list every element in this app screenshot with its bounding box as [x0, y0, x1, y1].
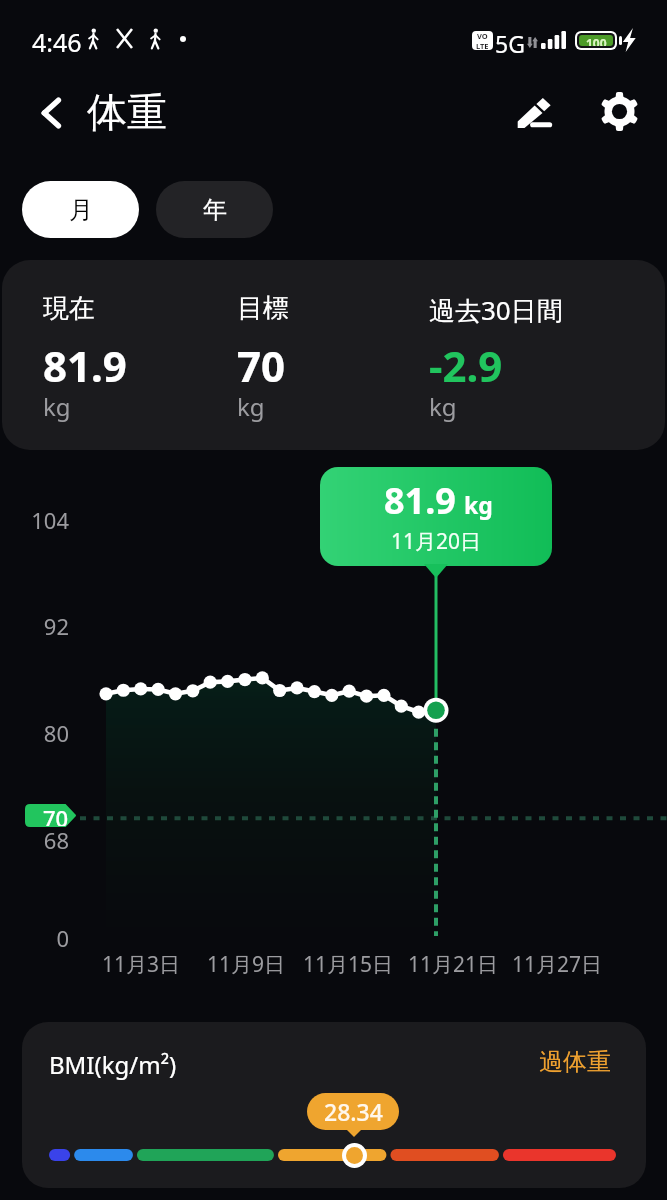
staticText: 年 [203, 195, 227, 225]
staticText: 80 [0, 718, 69, 748]
staticText: 11月27日 [497, 950, 617, 979]
staticText: 70 [43, 803, 69, 826]
staticText: 70 [237, 337, 286, 394]
staticText: 28.34 [324, 1096, 383, 1127]
staticText: 目標 [237, 292, 289, 325]
staticText: 11月21日 [393, 950, 513, 979]
staticText: 体重 [87, 87, 167, 137]
staticText: 11月15日 [288, 950, 408, 979]
staticText: 81.9 [43, 337, 127, 394]
staticText: 月 [69, 195, 93, 225]
staticText: 過体重 [539, 1047, 611, 1077]
staticText: 11月3日 [81, 950, 201, 979]
button[interactable]: 年 [156, 181, 273, 238]
staticText: kg [43, 390, 71, 423]
staticText: 81.9 [384, 476, 456, 525]
staticText: VO [477, 31, 488, 41]
staticText: kg [464, 489, 493, 520]
staticText: 4:46 [32, 25, 82, 59]
staticText: 92 [0, 611, 69, 641]
staticText: 現在 [43, 292, 95, 325]
staticText: 過去30日間 [429, 292, 563, 328]
staticText: 0 [0, 923, 69, 953]
staticText: 11月20日 [391, 527, 482, 556]
staticText: kg [429, 390, 457, 423]
button[interactable]: Settings [589, 81, 649, 141]
button[interactable]: Back [22, 83, 82, 143]
staticText: 5G [495, 28, 525, 59]
button[interactable]: Edit [504, 82, 564, 142]
button[interactable]: 月 [22, 181, 139, 238]
staticText: 104 [0, 505, 69, 535]
staticText: 11月9日 [186, 950, 306, 979]
staticText: -2.9 [429, 337, 503, 394]
staticText: kg [237, 390, 265, 423]
staticText: LTE [476, 41, 489, 50]
staticText: 68 [0, 825, 69, 855]
staticText: BMI(kg/m²) [49, 1048, 177, 1081]
staticText: 100 [586, 35, 607, 46]
